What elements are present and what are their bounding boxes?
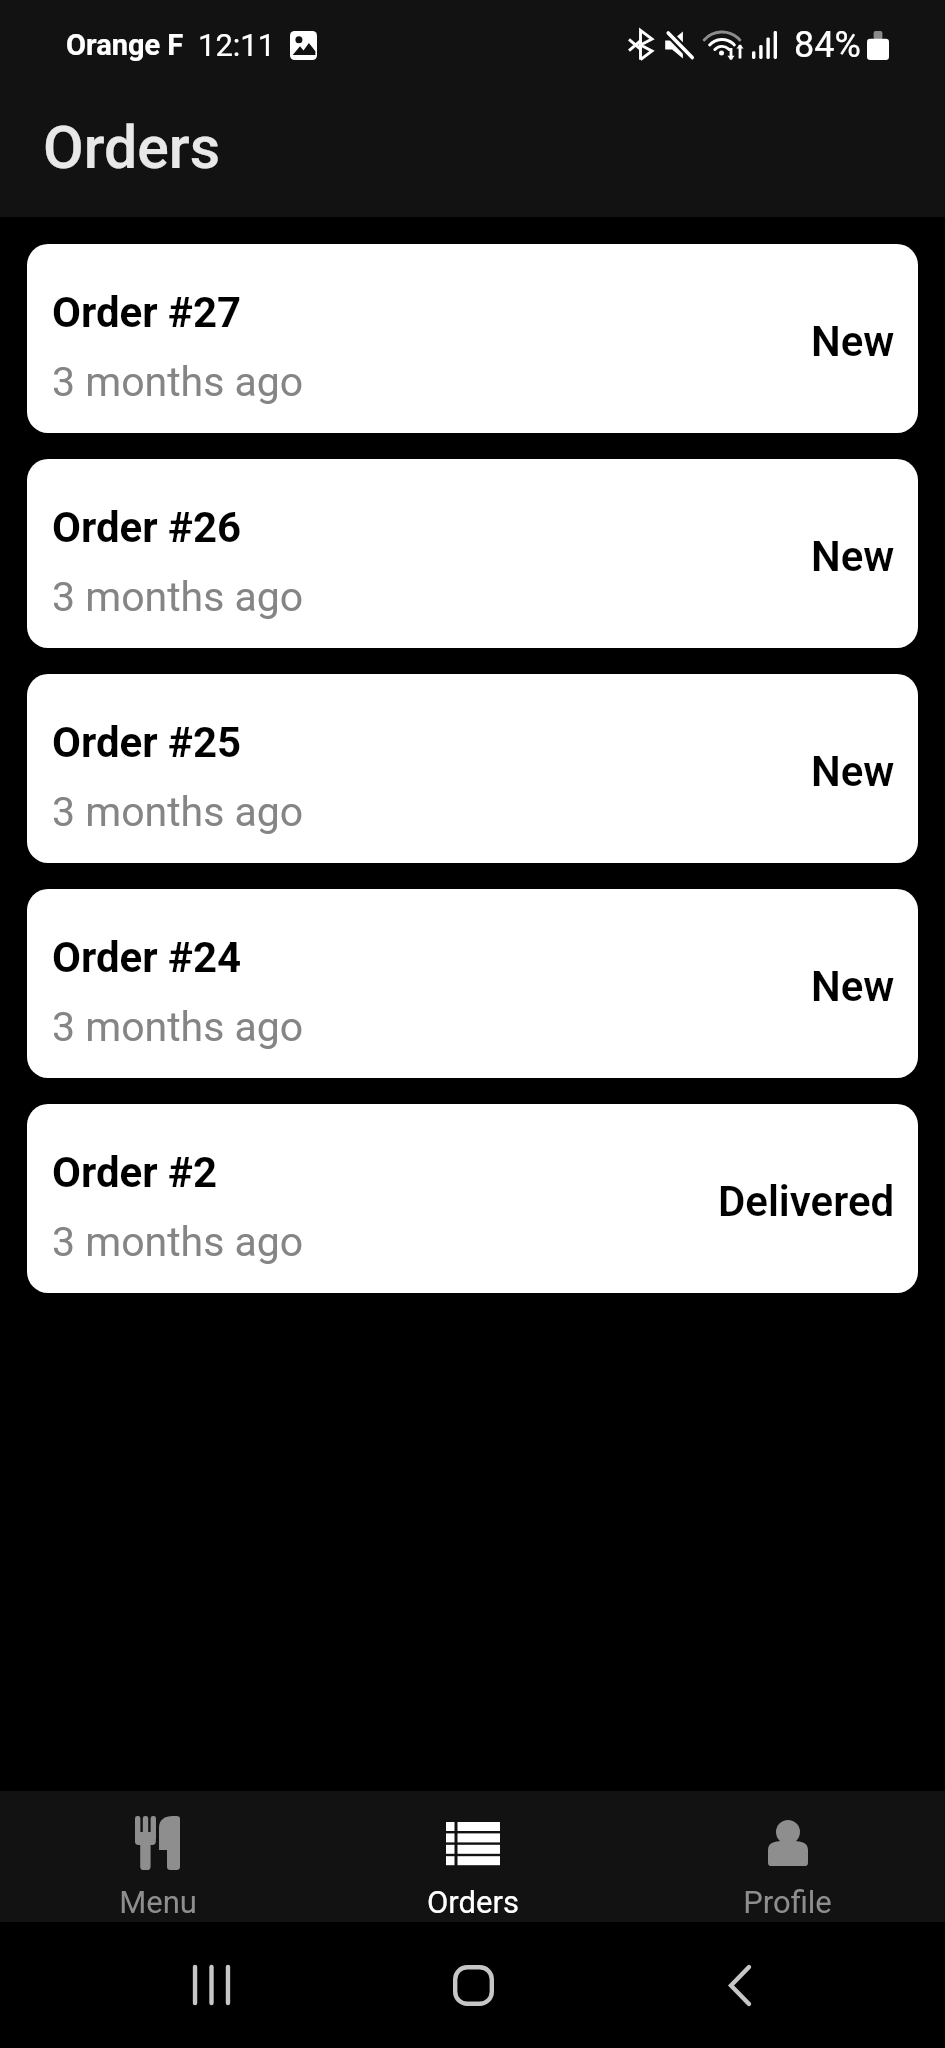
staticText: New <box>811 747 895 796</box>
staticText: Order #25 <box>52 718 242 767</box>
staticText: 3 months ago <box>52 1218 304 1266</box>
button[interactable]: Order #2 <box>27 1104 918 1293</box>
button[interactable]: Order #24 <box>27 889 918 1078</box>
button[interactable]: Menu <box>0 1791 315 1922</box>
staticText: 12:11 <box>198 27 276 63</box>
button[interactable]: Order #25 <box>27 674 918 863</box>
button[interactable]: Order #26 <box>27 459 918 648</box>
staticText: 84% <box>794 24 861 66</box>
staticText: New <box>811 532 895 581</box>
staticText: Orders <box>427 1884 519 1920</box>
button[interactable]: Home <box>428 1940 518 2030</box>
staticText: 3 months ago <box>52 1003 304 1051</box>
button[interactable]: Profile <box>630 1791 945 1922</box>
staticText: Orders <box>43 113 221 182</box>
staticText: Orange F <box>66 28 184 62</box>
staticText: Order #2 <box>52 1148 218 1197</box>
staticText: Order #26 <box>52 503 242 552</box>
staticText: 3 months ago <box>52 573 304 621</box>
staticText: Profile <box>743 1884 832 1920</box>
staticText: 3 months ago <box>52 788 304 836</box>
button[interactable]: Back <box>695 1940 785 2030</box>
staticText: Delivered <box>718 1177 895 1226</box>
button[interactable]: Orders <box>315 1791 630 1922</box>
button[interactable]: Order #27 <box>27 244 918 433</box>
staticText: 3 months ago <box>52 358 304 406</box>
staticText: New <box>811 317 895 366</box>
button[interactable]: Recent apps <box>166 1940 256 2030</box>
staticText: Order #27 <box>52 288 242 337</box>
staticText: New <box>811 962 895 1011</box>
staticText: Menu <box>119 1884 197 1920</box>
staticText: Order #24 <box>52 933 242 982</box>
